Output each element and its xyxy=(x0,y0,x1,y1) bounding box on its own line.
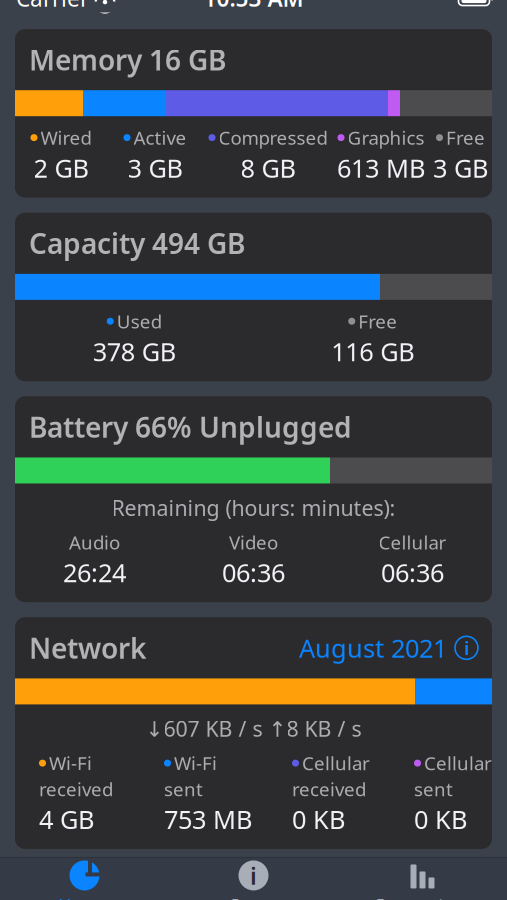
staticText: Video xyxy=(229,530,278,555)
staticText: ↓607 KB / s xyxy=(145,714,262,743)
staticText: Free xyxy=(446,125,485,150)
staticText: ↑8 KB / s xyxy=(268,714,361,743)
staticText: sent xyxy=(414,776,453,801)
staticText: Audio xyxy=(69,530,120,555)
staticText: received xyxy=(39,776,113,801)
staticText: 3 GB xyxy=(127,151,182,185)
staticText: Network xyxy=(29,629,146,666)
staticText: 753 MB xyxy=(164,802,252,836)
staticText: Cellular xyxy=(302,751,370,775)
staticText: August 2021 xyxy=(299,631,447,665)
staticText: Usage xyxy=(58,893,110,900)
staticText: 116 GB xyxy=(331,335,414,368)
staticText: Compressed xyxy=(218,125,327,150)
staticText: Graphics xyxy=(347,125,424,150)
staticText: Wi-Fi xyxy=(174,751,217,775)
staticText: 0 KB xyxy=(414,802,467,836)
staticText: 2 GB xyxy=(33,151,88,185)
staticText: Wired xyxy=(40,125,91,150)
staticText: 613 MB xyxy=(337,151,425,185)
button[interactable]: Comparison xyxy=(338,857,507,900)
staticText: Cellular xyxy=(424,751,492,775)
staticText: Battery 66% Unplugged xyxy=(29,408,352,445)
staticText: 378 GB xyxy=(93,335,176,368)
staticText: Specs xyxy=(230,893,277,900)
staticText: 06:36 xyxy=(381,556,444,589)
staticText: 06:36 xyxy=(222,556,285,589)
staticText: Cellular xyxy=(378,530,446,555)
staticText: 8 GB xyxy=(240,151,295,185)
button[interactable]: Usage xyxy=(0,857,169,900)
staticText: 4 GB xyxy=(39,802,94,836)
button[interactable]: i xyxy=(169,857,338,900)
staticText: 0 KB xyxy=(292,802,345,836)
staticText: Wi-Fi xyxy=(49,751,92,775)
staticText: sent xyxy=(164,776,203,801)
staticText: Comparison xyxy=(373,893,471,900)
staticText: Memory 16 GB xyxy=(29,41,226,78)
staticText: Active xyxy=(133,125,186,150)
staticText: 26:24 xyxy=(63,556,126,589)
staticText: Remaining (hours: minutes): xyxy=(111,493,395,522)
staticText: Capacity 494 GB xyxy=(29,225,245,262)
staticText: Free xyxy=(358,309,397,334)
staticText: Used xyxy=(117,309,162,334)
staticText: Carrier xyxy=(16,0,89,13)
staticText: i xyxy=(464,635,469,660)
button[interactable]: August 2021 xyxy=(299,631,478,665)
staticText: i xyxy=(250,859,257,891)
staticText: 3 GB xyxy=(433,151,488,185)
staticText: 10:53 AM xyxy=(203,0,303,13)
staticText: received xyxy=(292,776,366,801)
